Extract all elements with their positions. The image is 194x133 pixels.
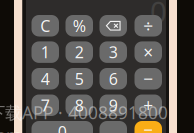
staticText: 下载APP · 4008891800 com [0, 101, 168, 133]
staticText: − [143, 67, 153, 90]
button[interactable]: 5 [65, 68, 93, 89]
staticText: 2 [75, 41, 84, 63]
button[interactable]: 4 [31, 68, 59, 89]
button[interactable]: + [134, 94, 162, 116]
button[interactable]: 3 [99, 41, 127, 63]
staticText: 1 [41, 41, 50, 63]
button[interactable]: . [99, 121, 127, 133]
staticText: = [143, 120, 153, 133]
button[interactable]: 1 [31, 41, 59, 63]
staticText: 7 [41, 95, 50, 116]
staticText: 0 [150, 0, 167, 31]
button[interactable]: × [134, 41, 162, 63]
button[interactable]: 9 [99, 94, 127, 116]
staticText: % [73, 15, 86, 36]
button[interactable]: C [31, 15, 59, 36]
staticText: × [143, 41, 153, 64]
staticText: 0 [58, 121, 67, 133]
staticText: C [40, 15, 50, 36]
staticText: 3 [109, 41, 118, 63]
button[interactable]: 0 [31, 121, 93, 133]
staticText: 6 [109, 68, 118, 89]
staticText: + [143, 94, 153, 117]
button[interactable]: 2 [65, 41, 93, 63]
button[interactable]: 8 [65, 94, 93, 116]
button[interactable]: Backspace [99, 15, 127, 36]
button[interactable]: % [65, 15, 93, 36]
staticText: 8 [75, 95, 84, 116]
button[interactable]: 7 [31, 94, 59, 116]
button[interactable]: = [134, 121, 162, 133]
staticText: 4 [41, 68, 50, 89]
button[interactable]: − [134, 68, 162, 89]
button[interactable]: 6 [99, 68, 127, 89]
staticText: 9 [109, 95, 118, 116]
staticText: 5 [75, 68, 84, 89]
staticText: ÷ [143, 14, 153, 37]
button[interactable]: ÷ [134, 15, 162, 36]
